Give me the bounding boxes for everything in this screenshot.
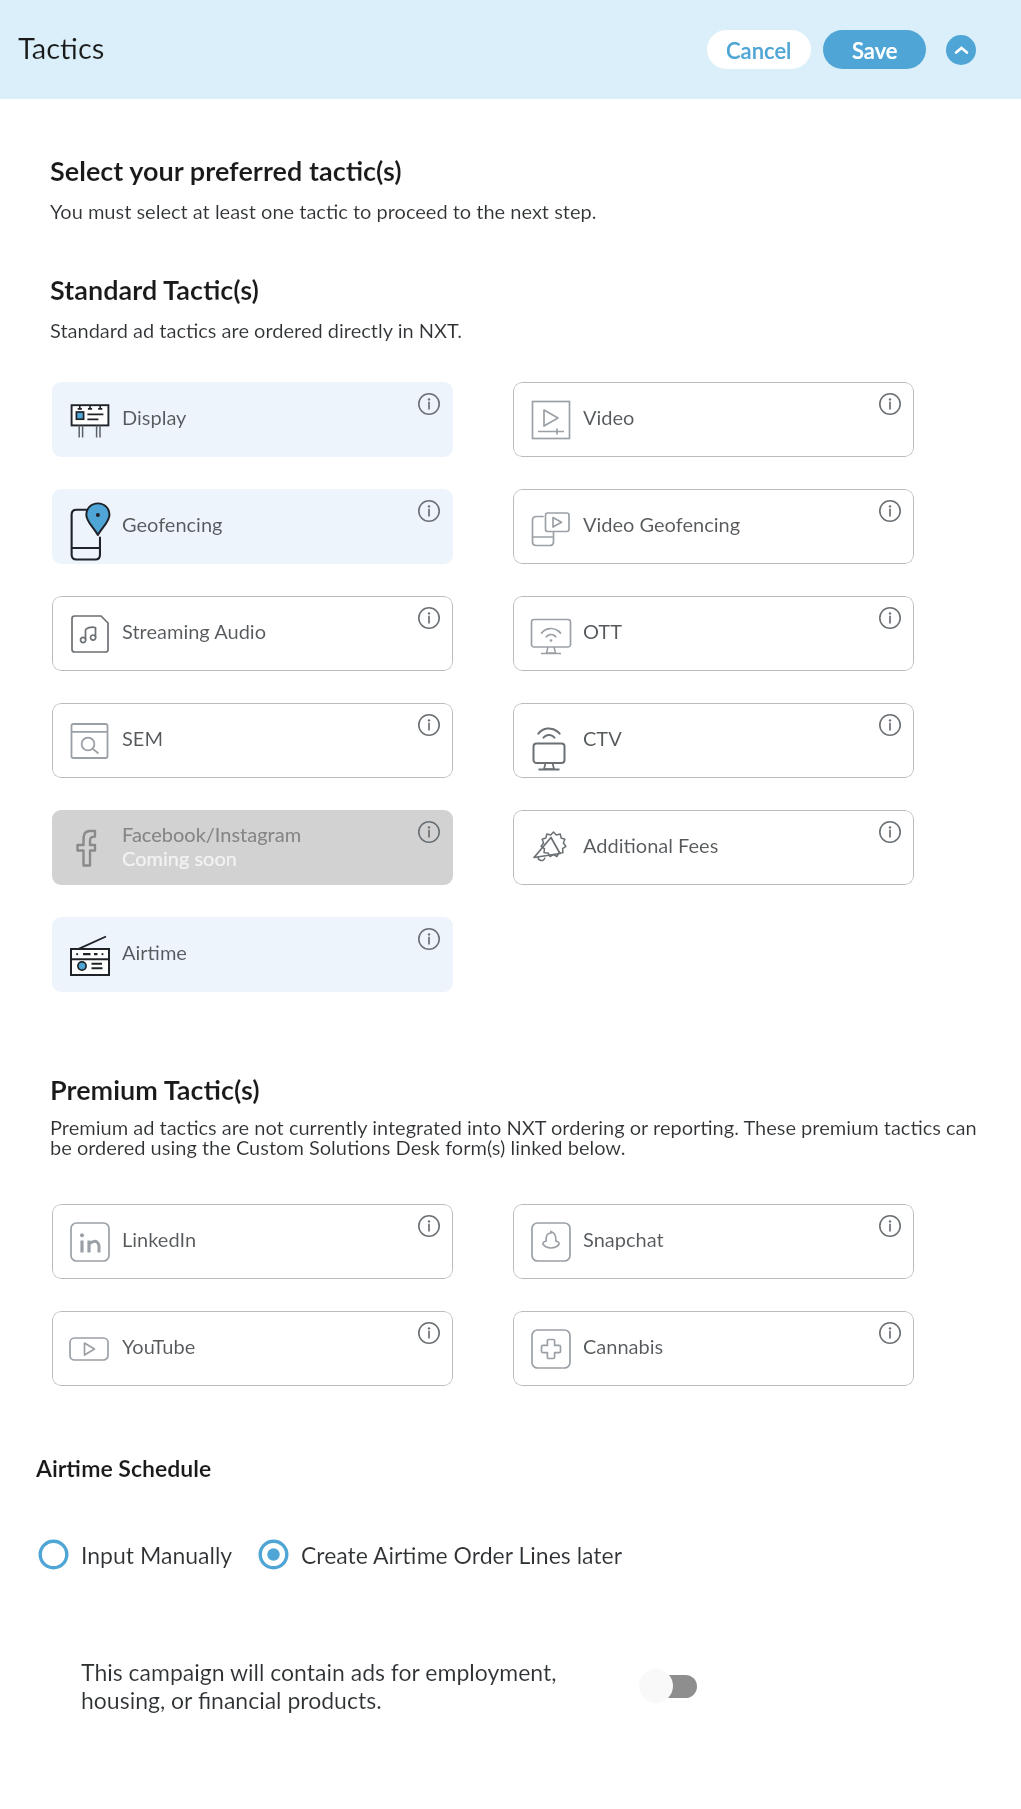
staticText: Facebook/Instagram [122, 822, 302, 846]
button[interactable]: Info about Additional Fees [879, 821, 901, 843]
button[interactable]: Info about Video Geofencing [879, 500, 901, 522]
button[interactable]: Streaming Audio [52, 596, 453, 671]
button[interactable]: CTV [513, 703, 914, 778]
staticText: This campaign will contain ads for emplo… [81, 1658, 561, 1714]
staticText: CTV [583, 726, 622, 750]
button[interactable]: Info about Display [418, 393, 440, 415]
button[interactable]: Facebook/Instagram [52, 810, 453, 885]
button[interactable]: Video [513, 382, 914, 457]
button[interactable]: Collapse section [946, 35, 976, 65]
staticText: Select your preferred tactic(s) [50, 154, 402, 186]
staticText: Video [583, 405, 635, 429]
button[interactable]: Info about SEM [418, 714, 440, 736]
button[interactable]: SEM [52, 703, 453, 778]
staticText: Display [122, 405, 187, 429]
staticText: Save [852, 37, 898, 63]
staticText: Standard ad tactics are ordered directly… [50, 318, 463, 342]
staticText: Input Manually [81, 1541, 233, 1569]
staticText: Airtime [122, 940, 187, 964]
staticText: Cancel [726, 37, 792, 63]
staticText: Snapchat [583, 1227, 664, 1251]
button[interactable]: Cannabis [513, 1311, 914, 1386]
staticText: Streaming Audio [122, 619, 266, 643]
button[interactable]: Info about LinkedIn [418, 1215, 440, 1237]
button[interactable]: Info about Video [879, 393, 901, 415]
button[interactable]: Additional Fees [513, 810, 914, 885]
button[interactable]: Info about YouTube [418, 1322, 440, 1344]
staticText: Coming soon [122, 846, 237, 870]
button[interactable]: Input Manually [38, 1539, 233, 1570]
button[interactable]: OTT [513, 596, 914, 671]
staticText: Airtime Schedule [36, 1454, 212, 1482]
staticText: LinkedIn [122, 1227, 197, 1251]
button[interactable]: Info about Geofencing [418, 500, 440, 522]
button[interactable]: Info about Streaming Audio [418, 607, 440, 629]
button[interactable]: Info about Snapchat [879, 1215, 901, 1237]
button[interactable]: YouTube [52, 1311, 453, 1386]
button[interactable]: Create Airtime Order Lines later [258, 1539, 623, 1570]
staticText: Cannabis [583, 1334, 664, 1358]
button[interactable]: Info about CTV [879, 714, 901, 736]
staticText: Standard Tactic(s) [50, 273, 259, 305]
button[interactable]: Toggle employment, housing or financial … [639, 1669, 697, 1703]
staticText: Geofencing [122, 512, 223, 536]
staticText: Additional Fees [583, 833, 719, 857]
button[interactable]: Info about Facebook/Instagram [418, 821, 440, 843]
staticText: You must select at least one tactic to p… [50, 199, 597, 223]
staticText: SEM [122, 726, 163, 750]
button[interactable]: Cancel [707, 30, 811, 69]
staticText: YouTube [122, 1334, 196, 1358]
button[interactable]: Geofencing [52, 489, 453, 564]
button[interactable]: Airtime [52, 917, 453, 992]
button[interactable]: Save [823, 30, 926, 69]
button[interactable]: Info about OTT [879, 607, 901, 629]
staticText: Premium Tactic(s) [50, 1073, 260, 1105]
button[interactable]: Info about Airtime [418, 928, 440, 950]
staticText: Tactics [18, 30, 105, 65]
button[interactable]: Info about Cannabis [879, 1322, 901, 1344]
button[interactable]: Display [52, 382, 453, 457]
staticText: Video Geofencing [583, 512, 741, 536]
button[interactable]: LinkedIn [52, 1204, 453, 1279]
button[interactable]: Video Geofencing [513, 489, 914, 564]
staticText: Premium ad tactics are not currently int… [50, 1115, 990, 1160]
button[interactable]: Snapchat [513, 1204, 914, 1279]
staticText: Create Airtime Order Lines later [301, 1541, 623, 1569]
staticText: OTT [583, 619, 622, 643]
